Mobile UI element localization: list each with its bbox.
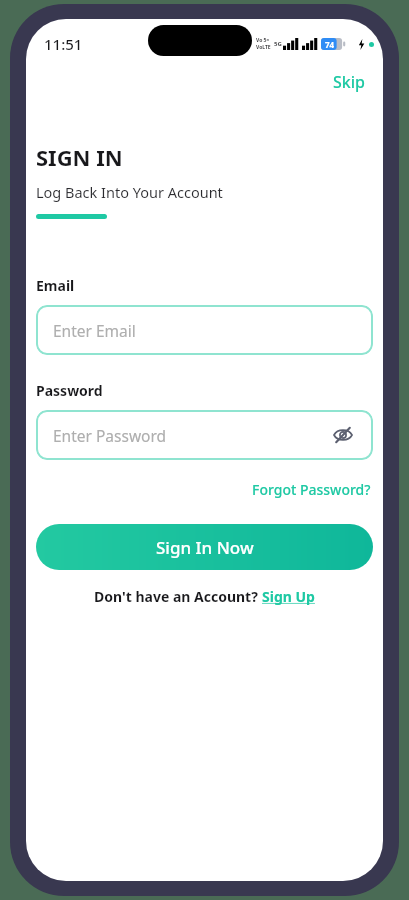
button[interactable]: Forgot Password? <box>250 477 373 502</box>
staticText: Log Back Into Your Account <box>36 182 223 202</box>
staticText: Enter Password <box>53 425 167 446</box>
staticText: Enter Email <box>53 320 136 341</box>
button[interactable]: Enter Password <box>36 410 373 460</box>
staticText: Forgot Password? <box>252 480 371 499</box>
staticText: Vo 5ᴳ <box>256 37 269 44</box>
staticText: 5G <box>274 40 282 48</box>
staticText: Sign In Now <box>156 536 254 559</box>
button[interactable]: Skip <box>325 67 373 97</box>
staticText: Skip <box>333 71 365 93</box>
button[interactable]: Toggle password visibility <box>330 422 356 448</box>
button[interactable]: Sign Up <box>262 587 315 606</box>
staticText: 74 <box>325 39 335 50</box>
button[interactable]: Enter Email <box>36 305 373 355</box>
staticText: Password <box>36 381 103 400</box>
staticText: VoLTE <box>256 44 271 51</box>
staticText: SIGN IN <box>36 142 123 172</box>
staticText: Email <box>36 276 75 295</box>
button[interactable]: Sign In Now <box>36 524 373 570</box>
staticText: Don't have an Account? <box>94 587 262 606</box>
staticText: Sign Up <box>262 587 315 606</box>
staticText: 11:51 <box>44 34 83 54</box>
